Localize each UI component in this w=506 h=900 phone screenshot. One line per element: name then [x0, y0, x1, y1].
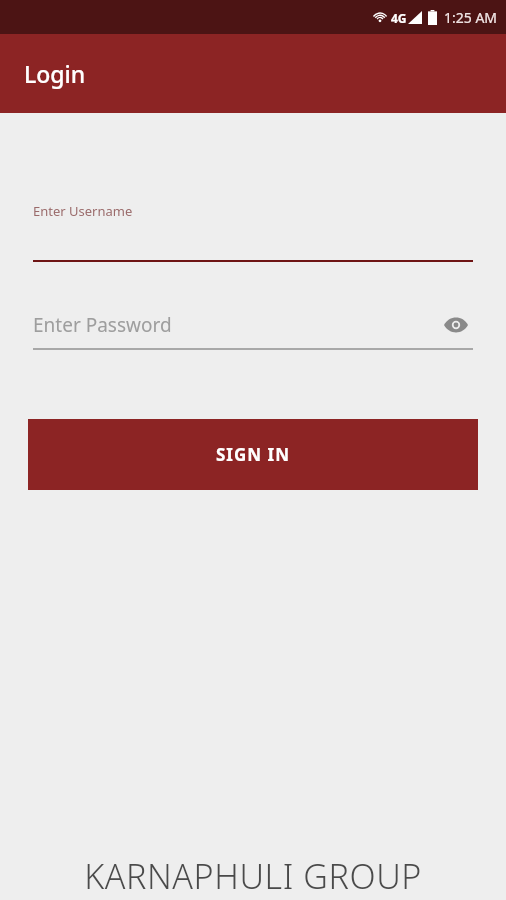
- staticText: SIGN IN: [216, 443, 290, 466]
- staticText: KARNAPHULI GROUP: [0, 853, 506, 899]
- button[interactable]: Enter Password: [33, 308, 473, 350]
- button[interactable]: Enter Username: [33, 202, 473, 262]
- button[interactable]: Show password: [439, 308, 473, 342]
- staticText: 1:25 AM: [444, 8, 498, 27]
- staticText: Enter Password: [33, 312, 439, 338]
- staticText: Login: [24, 58, 86, 89]
- staticText: Enter Username: [33, 202, 133, 220]
- staticText: 4G: [391, 10, 407, 26]
- button[interactable]: SIGN IN: [28, 419, 478, 490]
